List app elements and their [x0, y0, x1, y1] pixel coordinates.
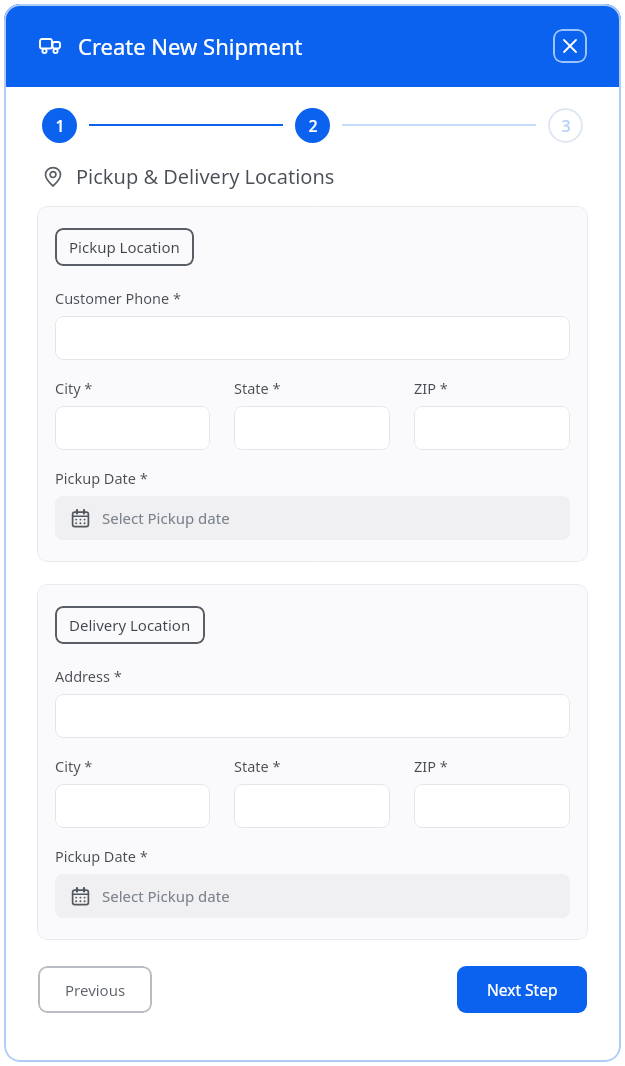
- staticText: ZIP *: [414, 756, 448, 776]
- button[interactable]: [414, 406, 570, 450]
- button[interactable]: [55, 784, 210, 828]
- button[interactable]: [55, 406, 210, 450]
- staticText: Pickup & Delivery Locations: [76, 163, 335, 190]
- button[interactable]: [55, 316, 570, 360]
- button[interactable]: Select Pickup date: [55, 496, 570, 540]
- staticText: State *: [234, 378, 281, 398]
- button[interactable]: Previous: [38, 966, 152, 1013]
- button[interactable]: 1: [42, 108, 77, 143]
- button[interactable]: Close: [553, 29, 587, 63]
- button[interactable]: 3: [548, 108, 583, 143]
- staticText: State *: [234, 756, 281, 776]
- staticText: 1: [55, 115, 65, 137]
- staticText: 3: [561, 115, 571, 137]
- staticText: Address *: [55, 666, 122, 686]
- button[interactable]: Next Step: [457, 966, 587, 1013]
- staticText: Select Pickup date: [102, 886, 230, 906]
- staticText: Pickup Date *: [55, 468, 148, 488]
- button[interactable]: Delivery Location: [55, 606, 205, 644]
- button[interactable]: 2: [295, 108, 330, 143]
- staticText: Delivery Location: [69, 615, 191, 635]
- staticText: Create New Shipment: [78, 31, 303, 61]
- staticText: City *: [55, 378, 93, 398]
- staticText: City *: [55, 756, 93, 776]
- staticText: Select Pickup date: [102, 508, 230, 528]
- button[interactable]: Select Pickup date: [55, 874, 570, 918]
- staticText: Pickup Date *: [55, 846, 148, 866]
- staticText: 2: [308, 115, 318, 137]
- staticText: Next Step: [487, 979, 558, 1000]
- staticText: Previous: [65, 980, 126, 1000]
- staticText: Customer Phone *: [55, 288, 181, 308]
- button[interactable]: [234, 406, 390, 450]
- staticText: Pickup Location: [69, 237, 180, 257]
- button[interactable]: Pickup Location: [55, 228, 194, 266]
- button[interactable]: [414, 784, 570, 828]
- staticText: ZIP *: [414, 378, 448, 398]
- button[interactable]: [234, 784, 390, 828]
- button[interactable]: [55, 694, 570, 738]
